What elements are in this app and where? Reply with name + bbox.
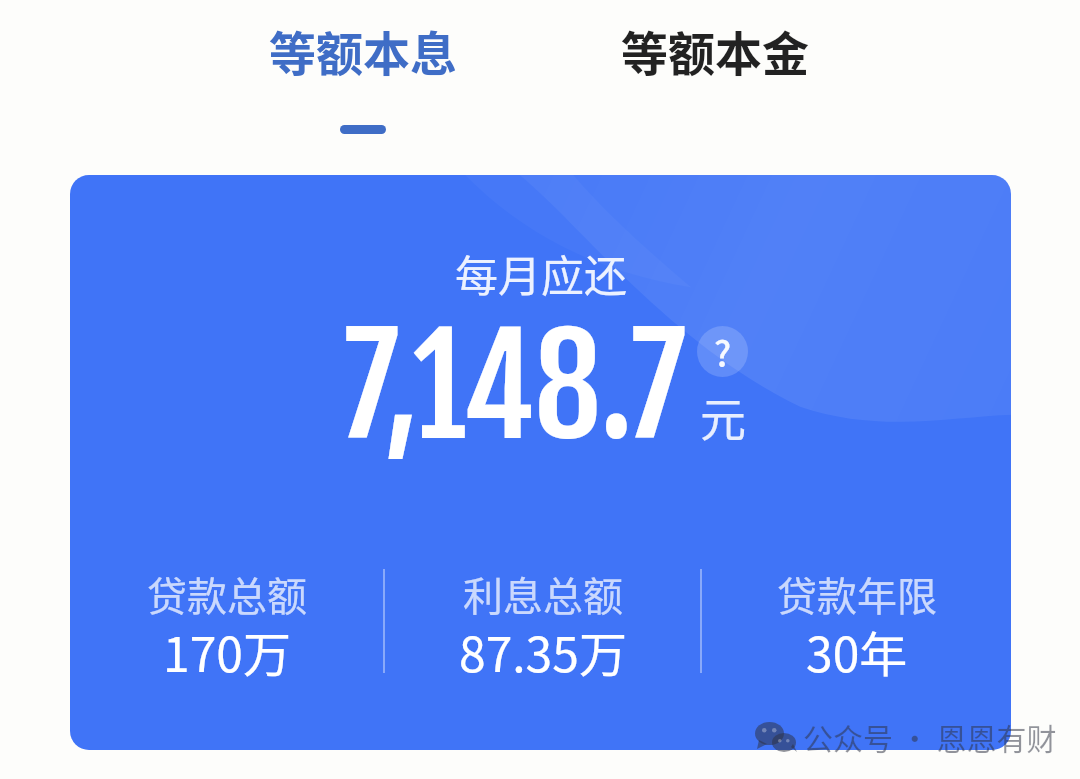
staticText: 等额本金: [621, 16, 809, 84]
button[interactable]: 利息总额: [385, 565, 700, 693]
staticText: 元: [700, 383, 746, 450]
staticText: 每月应还: [455, 242, 627, 304]
staticText: 170万: [163, 616, 291, 686]
staticText: 利息总额: [463, 565, 623, 623]
other: 微信公众号: [755, 720, 799, 752]
staticText: ?: [714, 326, 732, 377]
staticText: 30年: [806, 616, 908, 686]
staticText: 87.35万: [459, 616, 627, 686]
button[interactable]: 等额本息: [232, 16, 494, 138]
staticText: 等额本息: [269, 16, 457, 84]
button[interactable]: 月供说明: [697, 326, 748, 377]
staticText: 贷款年限: [777, 565, 937, 623]
staticText: 公众号 · 恩恩有财: [803, 715, 1063, 758]
button[interactable]: 贷款总额: [70, 565, 383, 693]
button[interactable]: 贷款年限: [702, 565, 1011, 693]
button[interactable]: 等额本金: [584, 16, 846, 90]
staticText: 7,148.7: [344, 303, 686, 471]
staticText: 贷款总额: [147, 565, 307, 623]
